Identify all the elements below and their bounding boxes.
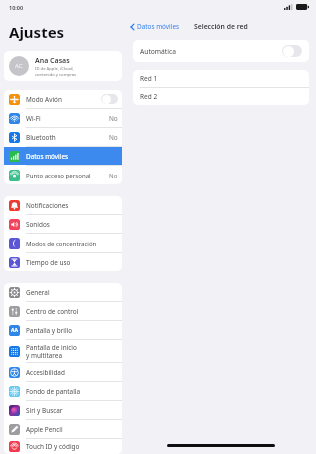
staticText: ID de Apple, iCloud, contenido y compras	[35, 66, 77, 77]
staticText: Ana Casas	[35, 56, 70, 66]
button[interactable]: Punto acceso personal	[4, 166, 122, 184]
button[interactable]: Touch ID y código	[4, 439, 122, 454]
staticText: General	[26, 288, 50, 297]
button[interactable]: Red 1	[133, 70, 309, 87]
staticText: Tiempo de uso	[26, 258, 71, 267]
button[interactable]: Datos móviles	[4, 147, 122, 165]
staticText: Bluetooth	[26, 133, 56, 142]
staticText: Red 2	[140, 92, 158, 101]
staticText: AC	[15, 62, 23, 70]
button[interactable]: Bluetooth	[4, 128, 122, 146]
staticText: Datos móviles	[137, 22, 180, 31]
staticText: Red 1	[140, 74, 158, 83]
staticText: Punto acceso personal	[26, 171, 91, 179]
staticText: Selección de red	[194, 22, 248, 31]
button[interactable]: Accesibilidad	[4, 363, 122, 381]
staticText: Modo Avión	[26, 95, 62, 104]
button[interactable]: Red 2	[133, 88, 309, 105]
staticText: No	[109, 171, 118, 179]
button[interactable]: General	[4, 283, 122, 301]
button[interactable]: Activar o desactivar	[101, 94, 118, 104]
staticText: Accesibilidad	[26, 368, 65, 377]
button[interactable]: Notificaciones	[4, 196, 122, 214]
staticText: Sonidos	[26, 220, 50, 229]
button[interactable]: Wi-Fi	[4, 109, 122, 127]
button[interactable]: Sonidos	[4, 215, 122, 233]
button[interactable]: Pantalla de inicio y multitarea	[4, 340, 122, 362]
staticText: Notificaciones	[26, 201, 69, 210]
staticText: Datos móviles	[26, 152, 69, 161]
button[interactable]: Centro de control	[4, 302, 122, 320]
staticText: Siri y Buscar	[26, 406, 63, 415]
button[interactable]: Modo Avión	[4, 90, 122, 108]
staticText: Touch ID y código	[26, 442, 80, 451]
staticText: Wi-Fi	[26, 114, 41, 123]
staticText: No	[109, 114, 118, 123]
staticText: Pantalla de inicio y multitarea	[26, 343, 77, 360]
button[interactable]: Siri y Buscar	[4, 401, 122, 419]
button[interactable]: Modos de concentración	[4, 234, 122, 252]
button[interactable]: AC	[4, 51, 122, 81]
button[interactable]: Tiempo de uso	[4, 253, 122, 271]
button[interactable]: Automática	[133, 40, 309, 62]
staticText: Fondo de pantalla	[26, 387, 81, 396]
staticText: Pantalla y brillo	[26, 326, 73, 335]
button[interactable]: Activar o desactivar	[282, 45, 302, 57]
button[interactable]: Apple Pencil	[4, 420, 122, 438]
staticText: AA	[11, 327, 18, 334]
staticText: Centro de control	[26, 307, 79, 316]
staticText: No	[109, 133, 118, 142]
staticText: Ajustes	[9, 22, 65, 42]
staticText: 10:00	[9, 4, 24, 11]
staticText: Automática	[140, 47, 176, 56]
button[interactable]: Datos móviles	[126, 19, 184, 34]
button[interactable]: Fondo de pantalla	[4, 382, 122, 400]
button[interactable]: AA	[4, 321, 122, 339]
staticText: Apple Pencil	[26, 425, 63, 434]
staticText: Modos de concentración	[26, 239, 97, 247]
